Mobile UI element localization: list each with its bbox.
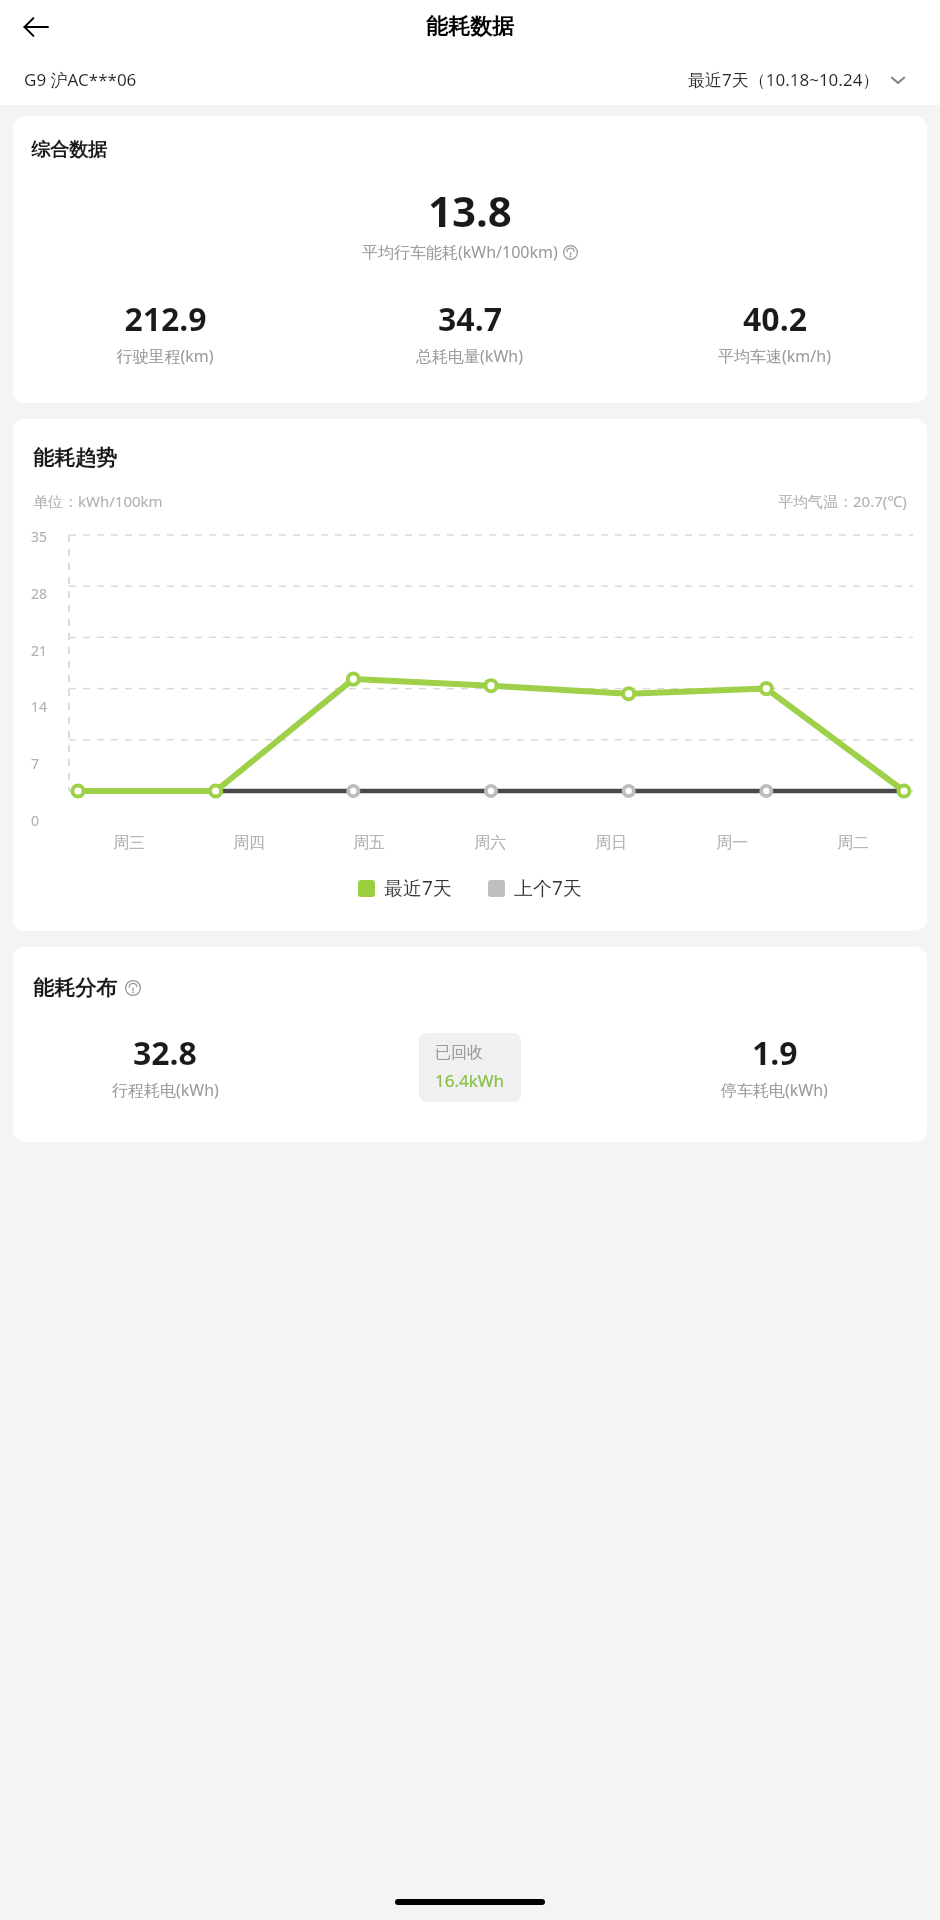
button[interactable]: 34.7	[317, 297, 622, 367]
staticText: 综合数据	[31, 138, 107, 162]
staticText: 行程耗电(kWh)	[112, 1079, 219, 1101]
button[interactable]: 212.9	[13, 297, 317, 367]
staticText: 14	[31, 697, 48, 713]
staticText: 平均气温：20.7(℃)	[778, 491, 907, 511]
staticText: 最近7天	[384, 875, 452, 901]
staticText: 周三	[113, 833, 145, 853]
staticText: 单位：kWh/100km	[33, 491, 163, 511]
button[interactable]: 最近7天（10.18~10.24）	[688, 68, 926, 91]
staticText: 212.9	[124, 297, 207, 341]
button[interactable]: 返回	[8, 0, 64, 53]
staticText: 周日	[595, 833, 627, 853]
staticText: 平均车速(km/h)	[718, 345, 831, 367]
staticText: 0	[31, 811, 40, 827]
staticText: 停车耗电(kWh)	[721, 1079, 828, 1101]
button[interactable]: 上个7天	[488, 875, 582, 901]
staticText: 能耗趋势	[33, 445, 117, 471]
staticText: 周四	[233, 833, 265, 853]
staticText: 周六	[474, 833, 506, 853]
staticText: 16.4kWh	[435, 1069, 505, 1092]
staticText: 能耗数据	[426, 13, 514, 41]
staticText: 32.8	[133, 1031, 197, 1075]
button[interactable]: 最近7天	[358, 875, 452, 901]
staticText: 最近7天（10.18~10.24）	[688, 68, 880, 91]
button[interactable]: 32.8	[13, 1031, 317, 1101]
staticText: 能耗分布	[33, 975, 117, 1001]
staticText: 21	[31, 641, 48, 657]
staticText: 平均行车能耗(kWh/100km)	[362, 241, 558, 263]
staticText: 28	[31, 584, 48, 600]
staticText: 1.9	[752, 1031, 798, 1075]
staticText: 上个7天	[514, 875, 582, 901]
button[interactable]: 已回收	[419, 1033, 521, 1102]
staticText: 总耗电量(kWh)	[416, 345, 523, 367]
staticText: 已回收	[435, 1043, 483, 1063]
staticText: 40.2	[743, 297, 807, 341]
button[interactable]: 40.2	[622, 297, 927, 367]
staticText: 13.8	[428, 182, 512, 239]
staticText: 周二	[837, 833, 869, 853]
staticText: 行驶里程(km)	[116, 345, 214, 367]
staticText: 35	[31, 527, 48, 543]
button[interactable]: G9 沪AC***06	[24, 68, 137, 91]
staticText: 34.7	[438, 297, 502, 341]
staticText: 7	[31, 754, 40, 770]
staticText: 周一	[716, 833, 748, 853]
button[interactable]: 1.9	[622, 1031, 927, 1101]
staticText: 周五	[353, 833, 385, 853]
